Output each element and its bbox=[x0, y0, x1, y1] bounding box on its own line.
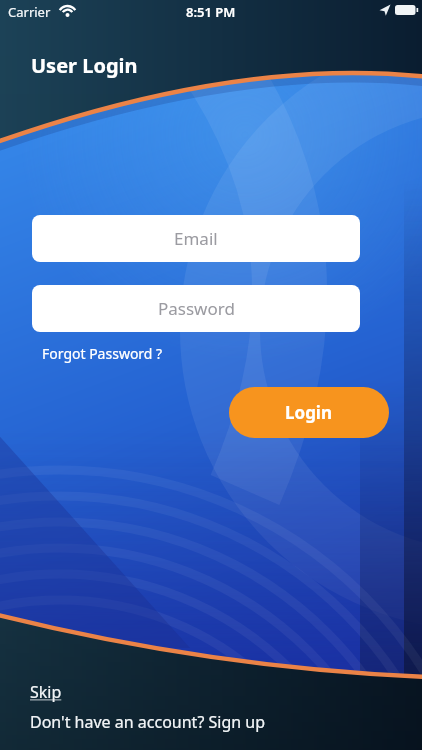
staticText: Forgot Password ? bbox=[42, 344, 163, 363]
staticText: Email bbox=[174, 227, 218, 250]
staticText: Skip bbox=[30, 681, 62, 703]
staticText: 8:51 PM bbox=[186, 3, 236, 21]
button[interactable]: Password bbox=[32, 285, 360, 332]
staticText: Carrier bbox=[8, 3, 51, 21]
button[interactable]: Forgot Password ? bbox=[42, 344, 163, 363]
button[interactable]: Don't have an account? Sign up bbox=[30, 711, 266, 733]
button[interactable]: Skip bbox=[30, 681, 62, 703]
staticText: Login bbox=[285, 401, 333, 424]
button[interactable]: Login bbox=[229, 387, 389, 438]
staticText: User Login bbox=[31, 52, 138, 79]
staticText: Don't have an account? Sign up bbox=[30, 711, 266, 733]
staticText: Password bbox=[158, 297, 235, 320]
button[interactable]: Email bbox=[32, 215, 360, 262]
